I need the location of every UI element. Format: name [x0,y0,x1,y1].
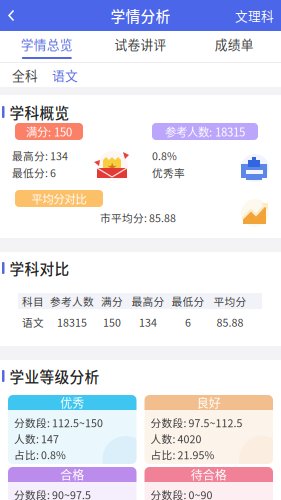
staticText: 最低分 [171,293,204,309]
staticText: 优秀率 [152,165,185,180]
staticText: 0.8% [152,148,177,163]
staticText: 平均分 [213,293,246,309]
staticText: 最高分 [131,293,164,309]
button[interactable]: 文理科 [228,0,281,33]
button[interactable]: 语文 [52,62,78,88]
button[interactable]: 试卷讲评 [94,31,187,62]
staticText: 语文 [22,314,44,330]
staticText: 85.88 [216,314,243,330]
staticText: 人数: 147 [14,431,59,446]
staticText: 学情分析 [110,5,170,26]
staticText: 平均分对比 [31,190,86,207]
staticText: 分数段: 90~97.5 [14,487,91,500]
staticText: 分数段: 0~90 [150,487,212,500]
staticText: 占比: 0.8% [14,447,66,462]
staticText: 参考人数 [50,293,94,309]
staticText: 良好 [197,394,221,411]
staticText: 学科概览 [9,101,69,123]
staticText: 学科对比 [9,257,69,279]
staticText: 分数段: 112.5~150 [14,415,103,430]
staticText: 学情总览 [21,35,73,53]
button[interactable]: 全科 [12,62,38,88]
staticText: 最低分: 6 [12,165,56,180]
button[interactable]: 成绩单 [187,31,281,62]
staticText: 待合格 [191,466,227,483]
staticText: 科目 [22,293,44,309]
staticText: 市平均分: 85.88 [100,210,176,225]
button[interactable]: 返回 [0,0,23,30]
staticText: 试卷讲评 [114,35,166,53]
staticText: ★ [107,159,116,173]
staticText: 参考人数: 18315 [165,123,245,140]
staticText: 最高分: 134 [12,148,68,163]
staticText: 优秀 [60,394,84,411]
staticText: 134 [139,314,157,330]
staticText: 合格 [60,466,84,483]
staticText: 人数: 4020 [150,431,201,446]
staticText: 分数段: 97.5~112.5 [150,415,242,430]
staticText: 6 [185,314,191,330]
staticText: 满分: 150 [26,123,72,140]
staticText: 全科 [12,66,38,84]
staticText: 文理科 [235,6,274,25]
staticText: 语文 [52,66,78,84]
staticText: 占比: 21.95% [150,447,214,462]
staticText: 150 [103,314,121,330]
button[interactable]: 学情总览 [0,31,94,62]
staticText: 成绩单 [215,35,254,53]
staticText: 学业等级分析 [9,365,99,387]
staticText: 满分 [101,293,123,309]
staticText: 18315 [57,314,87,330]
